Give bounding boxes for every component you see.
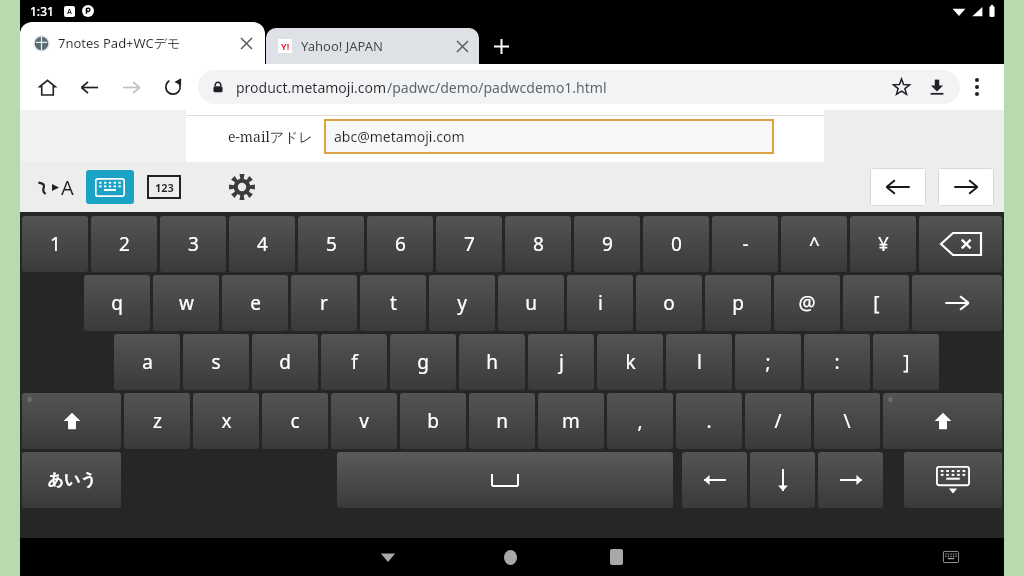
staticText: ; [765,349,771,375]
button[interactable]: Forward [114,70,148,104]
button[interactable]: abc@metamoji.com [325,120,773,153]
button[interactable]: product.metamoji.com [198,70,960,104]
button[interactable]: ¥ [850,216,916,272]
button[interactable]: d [252,334,318,390]
staticText: w [179,290,194,316]
button[interactable]: ^ [781,216,847,272]
button[interactable]: ] [873,334,939,390]
button[interactable]: Close tab [235,32,257,54]
button[interactable]: 7 [436,216,502,272]
button[interactable]: p [705,275,771,331]
button[interactable]: s [183,334,249,390]
button[interactable]: Home [490,538,530,576]
staticText: abc@metamoji.com [334,127,465,146]
button[interactable]: [ [843,275,909,331]
button[interactable]: 5 [298,216,364,272]
button[interactable]: \ [814,393,880,449]
button[interactable]: 1 [22,216,88,272]
button[interactable]: l [666,334,732,390]
button[interactable]: 8 [505,216,571,272]
staticText: Y! [281,40,290,52]
button[interactable]: Back [368,538,408,576]
button[interactable]: 2 [91,216,157,272]
button[interactable]: Handwriting input [32,167,78,207]
button[interactable]: - [712,216,778,272]
button[interactable]: j [528,334,594,390]
button[interactable]: Recent apps [596,538,636,576]
button[interactable]: Enter [912,275,1002,331]
button[interactable]: Move right [818,452,883,508]
button[interactable]: : [804,334,870,390]
button[interactable]: 4 [229,216,295,272]
staticText: j [559,349,564,375]
staticText: / [774,408,782,434]
button[interactable]: Backspace [919,216,1002,272]
button[interactable]: x [193,393,259,449]
staticText: i [598,290,603,316]
button[interactable]: Numeric input [148,176,180,198]
button[interactable]: , [607,393,673,449]
button[interactable]: Switch keyboard [934,540,968,574]
staticText: x [221,408,232,434]
button[interactable]: v [331,393,397,449]
button[interactable]: o [636,275,702,331]
button[interactable]: 3 [160,216,226,272]
button[interactable]: 7notes Pad+WCデモ [20,22,265,64]
button[interactable]: Y! [266,28,479,64]
button[interactable]: / [745,393,811,449]
button[interactable]: n [469,393,535,449]
button[interactable]: Move left [682,452,747,508]
button[interactable]: Shift [22,393,121,449]
button[interactable]: 0 [643,216,709,272]
staticText: h [486,349,498,375]
staticText: a [142,349,153,375]
button[interactable]: e [222,275,288,331]
button[interactable]: @ [774,275,840,331]
button[interactable]: c [262,393,328,449]
button[interactable]: Close tab [451,35,473,57]
staticText: A [61,174,74,201]
staticText: q [111,290,123,316]
button[interactable]: h [459,334,525,390]
staticText: k [625,349,636,375]
button[interactable]: Shift [883,393,1002,449]
button[interactable]: y [429,275,495,331]
button[interactable]: Next field [938,168,994,206]
staticText: g [417,349,429,375]
button[interactable]: Home [30,70,64,104]
button[interactable]: . [676,393,742,449]
staticText: ^ [809,231,820,257]
button[interactable]: t [360,275,426,331]
button[interactable]: m [538,393,604,449]
button[interactable]: z [124,393,190,449]
button[interactable]: New tab [479,28,523,64]
staticText: 5 [326,231,337,257]
button[interactable]: 6 [367,216,433,272]
button[interactable]: ; [735,334,801,390]
button[interactable]: Keyboard input [86,170,134,204]
button[interactable]: b [400,393,466,449]
button[interactable]: 9 [574,216,640,272]
button[interactable]: i [567,275,633,331]
button[interactable]: w [153,275,219,331]
button[interactable]: Previous field [870,168,926,206]
button[interactable]: Back [72,70,106,104]
button[interactable]: Space [337,452,673,508]
staticText: o [663,290,675,316]
button[interactable]: a [114,334,180,390]
button[interactable]: k [597,334,663,390]
button[interactable]: Reload [156,70,190,104]
button[interactable]: g [390,334,456,390]
button[interactable]: Settings [222,167,262,207]
button[interactable]: Download [922,72,952,102]
button[interactable]: More options [960,70,994,104]
button[interactable]: q [84,275,150,331]
button[interactable]: Hide keyboard [904,452,1002,508]
button[interactable]: r [291,275,357,331]
button[interactable]: あいう [22,452,121,508]
button[interactable]: Move down [750,452,815,508]
button[interactable]: f [321,334,387,390]
staticText: u [525,290,537,316]
button[interactable]: u [498,275,564,331]
button[interactable]: Bookmark [886,72,916,102]
